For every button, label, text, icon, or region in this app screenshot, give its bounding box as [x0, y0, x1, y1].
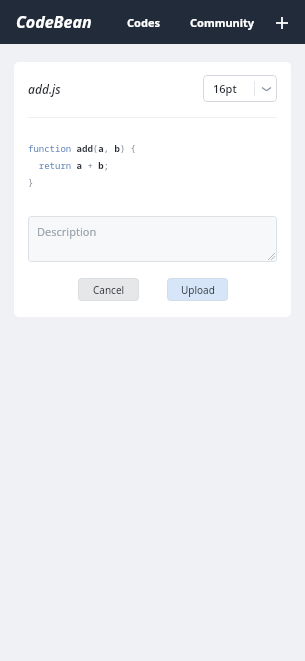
- button[interactable]: Description input: [28, 216, 277, 262]
- button[interactable]: CodeBean: [16, 11, 92, 33]
- button[interactable]: Add new code: [271, 12, 293, 34]
- staticText: function add(a, b) {: [28, 142, 137, 154]
- staticText: Cancel: [93, 283, 125, 297]
- button[interactable]: Cancel: [78, 278, 139, 301]
- staticText: 16pt: [213, 81, 237, 96]
- staticText: Upload: [181, 283, 215, 297]
- button[interactable]: Font size 16pt: [203, 75, 277, 102]
- button[interactable]: Codes: [121, 11, 166, 34]
- staticText: }: [28, 176, 34, 188]
- button[interactable]: add.js: [28, 81, 61, 97]
- staticText: Description: [37, 224, 97, 239]
- button[interactable]: Community: [184, 11, 261, 34]
- button[interactable]: Upload: [167, 278, 228, 301]
- staticText: return a + b;: [28, 159, 110, 171]
